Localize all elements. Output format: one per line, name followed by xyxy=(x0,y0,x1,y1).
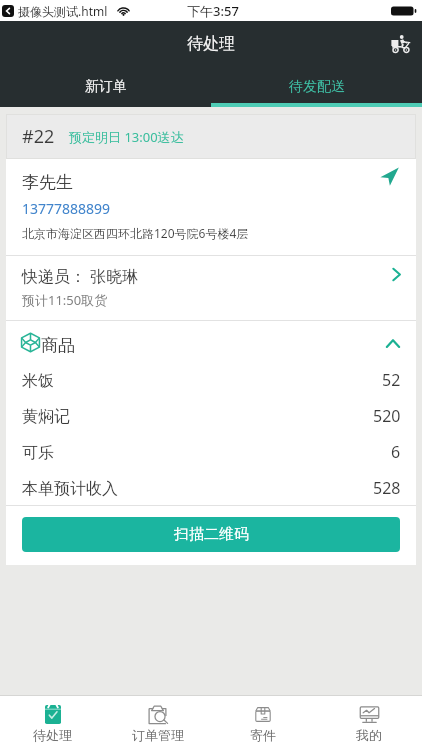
staticText: 订单管理 xyxy=(132,727,184,743)
staticText: 下午3:57 xyxy=(187,2,239,20)
staticText: 待处理 xyxy=(187,34,235,54)
button[interactable]: 我的 xyxy=(316,696,422,750)
staticText: 黄焖记 xyxy=(22,407,70,427)
staticText: 预定明日 13:00送达 xyxy=(69,128,184,146)
staticText: 13777888899 xyxy=(22,199,111,218)
staticText: 待发配送 xyxy=(289,78,345,96)
staticText: 扫描二维码 xyxy=(174,525,249,544)
staticText: 李先生 xyxy=(22,172,73,193)
button[interactable]: 待处理 xyxy=(0,696,105,750)
button[interactable]: 商品 xyxy=(6,321,416,361)
staticText: 520 xyxy=(373,405,401,427)
staticText: 待处理 xyxy=(33,727,72,743)
staticText: #22 xyxy=(22,124,55,149)
button[interactable]: 李先生 xyxy=(6,159,416,255)
staticText: 快递员： 张晓琳 xyxy=(22,265,139,287)
button[interactable]: Navigate xyxy=(377,164,401,188)
staticText: 52 xyxy=(382,369,401,391)
staticText: 可乐 xyxy=(22,443,54,463)
button[interactable]: 新订单 xyxy=(0,67,211,107)
button[interactable]: 快递员： 张晓琳 xyxy=(6,256,416,320)
staticText: 寄件 xyxy=(250,727,276,743)
staticText: 预计11:50取货 xyxy=(22,291,108,309)
staticText: 北京市海淀区西四环北路120号院6号楼4层 xyxy=(22,225,249,241)
button[interactable]: Delivery rider xyxy=(384,28,416,60)
staticText: 摄像头测试.html xyxy=(18,3,108,19)
button[interactable]: 待发配送 xyxy=(211,67,422,107)
staticText: 528 xyxy=(373,477,401,499)
staticText: 6 xyxy=(391,441,401,463)
button[interactable]: 扫描二维码 xyxy=(22,517,400,552)
staticText: 我的 xyxy=(356,727,382,743)
staticText: 新订单 xyxy=(85,78,127,96)
staticText: 本单预计收入 xyxy=(22,479,118,499)
button[interactable]: 订单管理 xyxy=(105,696,210,750)
staticText: 米饭 xyxy=(22,371,54,391)
staticText: 商品 xyxy=(41,335,75,356)
button[interactable]: 寄件 xyxy=(210,696,316,750)
